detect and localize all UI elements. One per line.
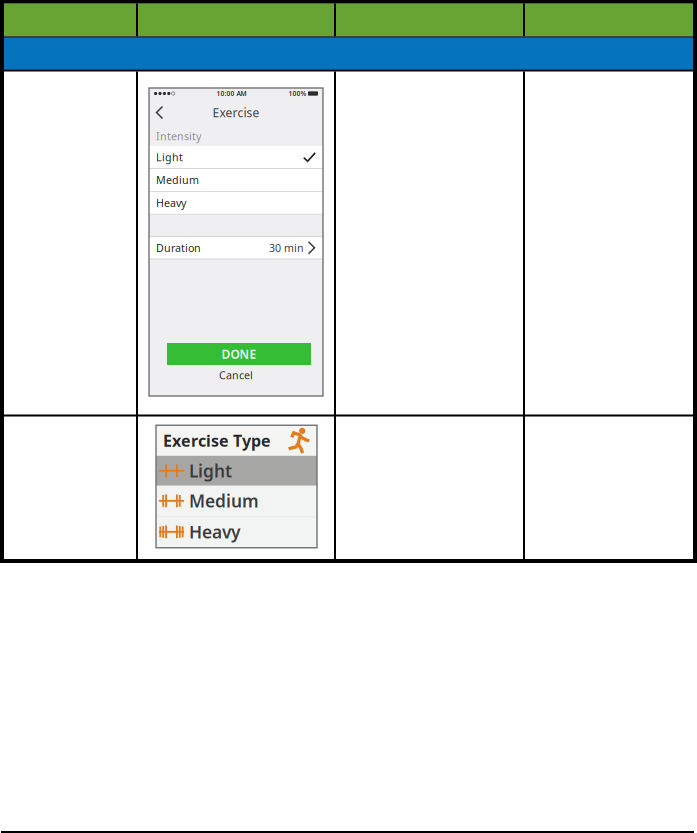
staticText: DONE (221, 346, 256, 362)
staticText: Exercise Type (163, 430, 271, 451)
staticText: Heavy (156, 196, 186, 210)
staticText: Heavy (189, 520, 240, 543)
staticText: Medium (189, 489, 259, 512)
staticText: 100% (288, 89, 306, 98)
staticText: Exercise (212, 104, 259, 120)
button[interactable]: Duration (149, 236, 323, 259)
button[interactable]: Heavy (149, 192, 323, 215)
staticText: Light (189, 459, 232, 482)
button[interactable]: Light (156, 456, 317, 486)
button[interactable]: Heavy (156, 517, 317, 548)
staticText: Cancel (219, 368, 253, 382)
button[interactable]: Light (149, 146, 323, 169)
staticText: Intensity (156, 129, 201, 143)
staticText: 10:00 AM (217, 89, 247, 98)
button[interactable]: Back (154, 104, 166, 120)
staticText: Duration (156, 241, 201, 255)
button[interactable]: DONE (167, 343, 311, 365)
button[interactable]: Medium (156, 486, 317, 517)
button[interactable]: Cancel (149, 365, 323, 385)
button[interactable]: Medium (149, 169, 323, 192)
staticText: Light (156, 150, 183, 164)
staticText: Medium (156, 173, 199, 187)
staticText: 30 min (269, 241, 304, 255)
